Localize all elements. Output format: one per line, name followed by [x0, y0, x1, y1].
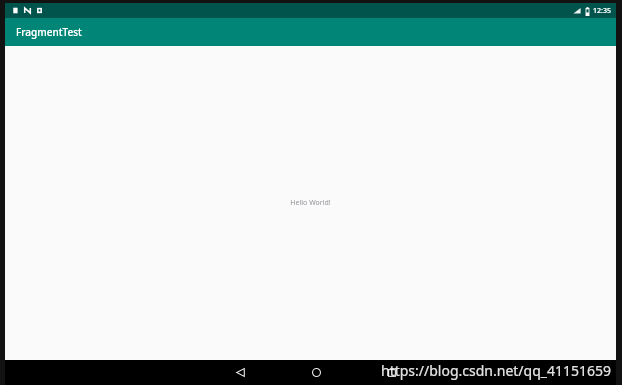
button[interactable]: Recent apps [375, 360, 409, 385]
staticText: Hello World! [290, 198, 331, 208]
staticText: 12:35 [593, 6, 611, 16]
staticText: https://blog.csdn.net/qq_41151659 [381, 361, 612, 380]
button[interactable]: Back [223, 360, 257, 385]
staticText: FragmentTest [16, 25, 82, 39]
button[interactable]: Home [299, 360, 333, 385]
